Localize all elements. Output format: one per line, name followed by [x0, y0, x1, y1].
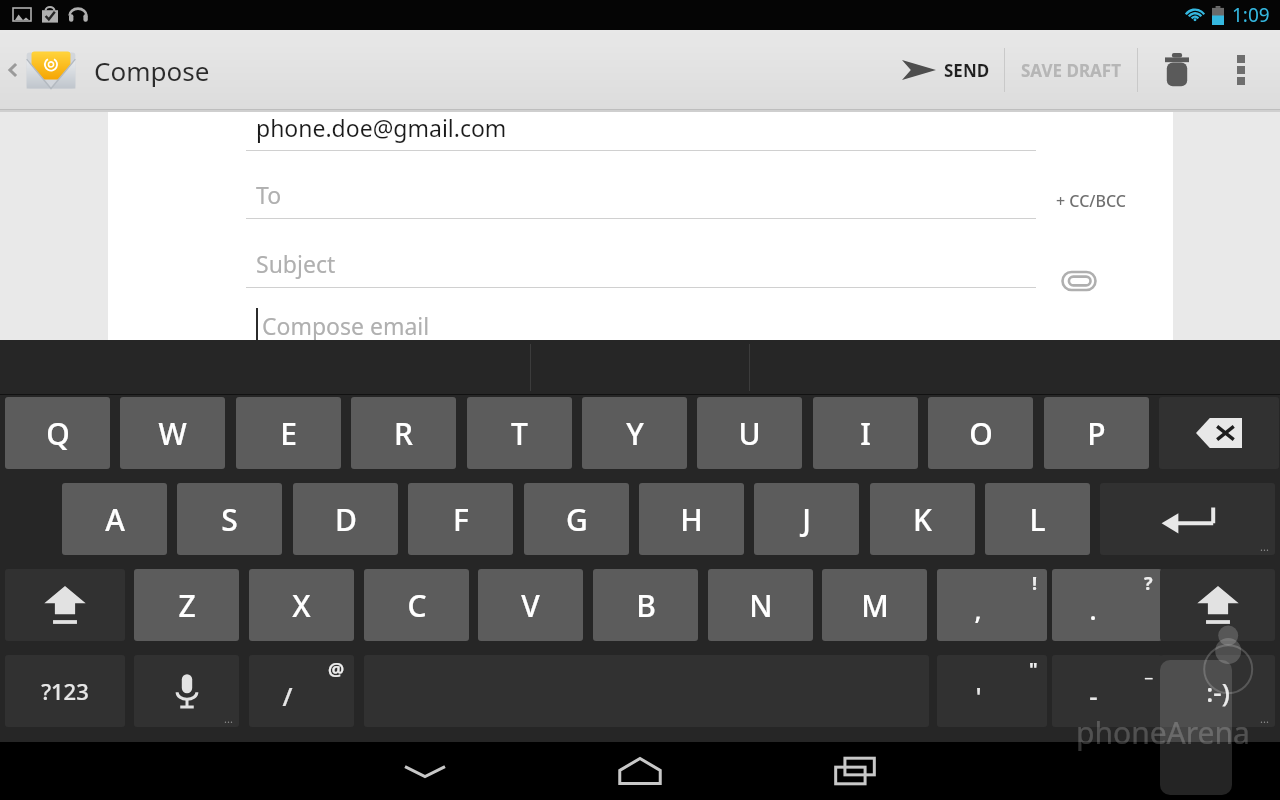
staticText: H	[680, 499, 703, 540]
staticText: !	[1032, 571, 1038, 596]
staticText: U	[738, 413, 761, 454]
staticText: To	[256, 179, 282, 210]
staticText: phone.doe@gmail.com	[256, 112, 507, 143]
button[interactable]: O	[928, 397, 1033, 469]
button[interactable]: Hide keyboard	[360, 742, 490, 800]
staticText: ...	[1260, 711, 1269, 726]
button[interactable]: Shift	[1160, 569, 1275, 641]
staticText: ...	[224, 711, 233, 726]
staticText: 1:09	[1232, 2, 1270, 28]
button[interactable]: P	[1044, 397, 1149, 469]
staticText: W	[158, 413, 187, 454]
staticText: Subject	[256, 248, 336, 279]
staticText: E	[280, 413, 297, 454]
staticText: Q	[46, 413, 70, 454]
button[interactable]: More options	[1216, 38, 1266, 102]
staticText: -	[1089, 678, 1098, 713]
button[interactable]: E	[236, 397, 341, 469]
button[interactable]: Voice input	[134, 655, 239, 727]
button[interactable]: Recent apps	[790, 742, 920, 800]
button[interactable]: /	[249, 655, 354, 727]
staticText: :-)	[1206, 674, 1230, 709]
button[interactable]: B	[593, 569, 698, 641]
staticText: T	[511, 413, 528, 454]
staticText: SAVE DRAFT	[1021, 59, 1121, 82]
button[interactable]: M	[822, 569, 927, 641]
button[interactable]: Home	[575, 742, 705, 800]
button[interactable]: I	[813, 397, 918, 469]
staticText: C	[407, 585, 427, 626]
button[interactable]: Y	[582, 397, 687, 469]
button[interactable]: Subject	[246, 239, 1036, 287]
button[interactable]: Attach file	[1053, 255, 1105, 307]
staticText: + CC/BCC	[1056, 190, 1126, 212]
staticText: _	[1145, 657, 1153, 682]
staticText: ,	[974, 592, 982, 627]
button[interactable]: L	[985, 483, 1090, 555]
button[interactable]: S	[177, 483, 282, 555]
staticText: X	[292, 585, 311, 626]
staticText: Z	[178, 585, 196, 626]
staticText: SEND	[944, 59, 990, 82]
button[interactable]: Compose	[0, 41, 218, 99]
staticText: @	[328, 657, 345, 682]
button[interactable]: Shift	[5, 569, 125, 641]
button[interactable]: N	[708, 569, 813, 641]
button[interactable]: ,	[937, 569, 1047, 641]
staticText: "	[1029, 657, 1038, 682]
button[interactable]: T	[467, 397, 572, 469]
button[interactable]: Backspace	[1159, 397, 1279, 469]
staticText: G	[566, 499, 588, 540]
staticText: A	[105, 499, 125, 540]
staticText: Compose	[94, 53, 210, 88]
staticText: N	[749, 585, 773, 626]
button[interactable]: F	[408, 483, 513, 555]
staticText: phoneArena	[1076, 712, 1250, 753]
staticText: R	[394, 413, 413, 454]
staticText: B	[636, 585, 656, 626]
button[interactable]: :-)	[1160, 655, 1275, 727]
button[interactable]: + CC/BCC	[1048, 182, 1134, 220]
staticText: J	[802, 499, 811, 540]
button[interactable]: Enter	[1100, 483, 1275, 555]
button[interactable]: H	[639, 483, 744, 555]
staticText: ...	[1260, 539, 1269, 554]
button[interactable]: Discard	[1138, 38, 1216, 102]
button[interactable]: G	[524, 483, 629, 555]
button[interactable]: ?123	[5, 655, 125, 727]
button[interactable]: -	[1052, 655, 1162, 727]
button[interactable]: To	[246, 170, 1036, 218]
button[interactable]: X	[249, 569, 354, 641]
staticText: ?	[1144, 571, 1153, 596]
button[interactable]: R	[351, 397, 456, 469]
button[interactable]: A	[62, 483, 167, 555]
staticText: P	[1087, 413, 1106, 454]
staticText: D	[335, 499, 357, 540]
button[interactable]: Z	[134, 569, 239, 641]
button[interactable]: V	[478, 569, 583, 641]
button[interactable]: J	[754, 483, 859, 555]
button[interactable]: U	[697, 397, 802, 469]
button[interactable]: .	[1052, 569, 1162, 641]
button[interactable]: W	[120, 397, 225, 469]
staticText: O	[969, 413, 993, 454]
button[interactable]: '	[937, 655, 1047, 727]
button[interactable]: C	[364, 569, 469, 641]
staticText: F	[453, 499, 469, 540]
staticText: ?123	[41, 676, 89, 706]
staticText: '	[975, 678, 982, 713]
staticText: V	[521, 585, 540, 626]
button[interactable]: SAVE DRAFT	[1005, 42, 1137, 98]
staticText: K	[913, 499, 932, 540]
button[interactable]: SEND	[888, 42, 1004, 98]
button[interactable]: K	[870, 483, 975, 555]
staticText: M	[861, 585, 889, 626]
staticText: Compose email	[262, 310, 430, 341]
staticText: Y	[626, 413, 644, 454]
button[interactable]: Q	[5, 397, 110, 469]
button[interactable]: D	[293, 483, 398, 555]
staticText: .	[1089, 592, 1097, 627]
staticText: /	[282, 678, 293, 713]
staticText: S	[221, 499, 238, 540]
